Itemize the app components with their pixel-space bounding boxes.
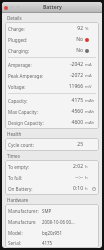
button[interactable]: Max Capacity: — [5, 106, 99, 117]
button[interactable]: Charge: — [5, 23, 99, 34]
staticText: Peak Amperage: — [8, 73, 69, 79]
button[interactable]: Peak Amperage: — [5, 70, 99, 81]
staticText: No — [76, 36, 83, 43]
button[interactable]: Manufacturer: — [5, 205, 99, 216]
staticText: Hardware — [7, 197, 29, 203]
staticText: 4600 — [71, 119, 83, 126]
staticText: Design Capacity: — [8, 120, 71, 126]
staticText: On Battery: — [8, 186, 73, 192]
staticText: 92 — [77, 25, 83, 32]
staticText: 2:02 — [73, 163, 83, 170]
staticText: h — [85, 175, 88, 181]
staticText: h — [85, 186, 88, 192]
staticText: 25 — [77, 141, 83, 148]
button[interactable]: Close — [4, 6, 8, 10]
button[interactable]: Manufacture date: — [5, 216, 99, 227]
staticText: 4175 — [71, 97, 83, 104]
button[interactable]: Capacity: — [5, 95, 99, 106]
staticText: To full: — [8, 175, 75, 181]
staticText: Plugged: — [8, 37, 76, 43]
staticText: mAh — [85, 120, 95, 126]
staticText: 11966 — [68, 83, 83, 90]
button[interactable]: To empty: — [5, 161, 99, 172]
button[interactable]: Amperage: — [5, 59, 99, 70]
staticText: 2008-10-06 00... — [42, 219, 96, 225]
staticText: 4175 — [42, 240, 96, 246]
button[interactable]: Cycle count: — [5, 139, 99, 150]
staticText: Manufacturer: — [8, 208, 42, 214]
button[interactable]: Charging: — [5, 45, 99, 56]
staticText: SMP — [42, 208, 96, 214]
staticText: Charging: — [8, 48, 76, 54]
staticText: 0:10 — [73, 185, 83, 192]
staticText: Manufacture date: — [8, 219, 42, 225]
staticText: Amperage: — [8, 62, 69, 68]
staticText: Max Capacity: — [8, 109, 71, 115]
staticText: mV — [85, 84, 92, 90]
staticText: Battery — [43, 4, 62, 11]
staticText: --:-- — [75, 174, 83, 181]
button[interactable]: Serial: — [5, 238, 99, 247]
staticText: Charge: — [8, 26, 77, 32]
staticText: 4560 — [71, 108, 83, 115]
button[interactable]: On Battery: — [5, 183, 99, 194]
button[interactable]: Design Capacity: — [5, 117, 99, 128]
staticText: mAh — [85, 109, 95, 115]
staticText: h — [85, 164, 88, 170]
staticText: No — [76, 47, 83, 54]
staticText: Cycle count: — [8, 142, 77, 148]
staticText: Health — [7, 131, 22, 137]
staticText: mA — [85, 73, 92, 79]
button[interactable]: Voltage: — [5, 81, 99, 92]
staticText: Details — [7, 15, 22, 21]
staticText: % — [85, 26, 89, 32]
button[interactable]: Model: — [5, 227, 99, 238]
staticText: -2072 — [69, 72, 83, 79]
staticText: mAh — [85, 98, 95, 104]
button[interactable]: Plugged: — [5, 34, 99, 45]
staticText: To empty: — [8, 164, 73, 170]
staticText: Model: — [8, 230, 42, 236]
staticText: Capacity: — [8, 98, 71, 104]
staticText: -2042 — [69, 61, 83, 68]
staticText: Voltage: — [8, 84, 68, 90]
staticText: Serial: — [8, 240, 42, 246]
button[interactable]: To full: — [5, 172, 99, 183]
staticText: mA — [85, 62, 92, 68]
staticText: Times — [7, 153, 20, 159]
staticText: bq20z951 — [42, 230, 96, 236]
